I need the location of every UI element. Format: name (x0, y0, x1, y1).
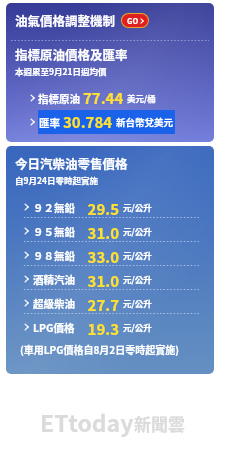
staticText: 33.0 (81, 246, 119, 264)
staticText: 超級柴油 (33, 296, 75, 311)
staticText: ETtoday (40, 405, 134, 438)
staticText: 27.7 (81, 294, 119, 312)
staticText: 31.0 (81, 222, 119, 240)
button[interactable]: ９８無鉛 (24, 246, 204, 264)
staticText: 酒精汽油 (33, 272, 75, 287)
button[interactable]: 指標原油 (30, 87, 156, 109)
button[interactable]: 酒精汽油 (24, 270, 204, 288)
staticText: 19.3 (81, 318, 119, 336)
button[interactable]: 超級柴油 (24, 294, 204, 312)
staticText: 今日汽柴油零售價格 (15, 154, 128, 172)
button[interactable]: 匯率 (30, 110, 175, 134)
staticText: 29.5 (81, 198, 119, 216)
staticText: 指標原油價格及匯率 (15, 45, 128, 63)
staticText: 元/公升 (123, 201, 152, 213)
staticText: 31.0 (81, 270, 119, 288)
staticText: 新台幣兌美元 (116, 115, 174, 129)
staticText: 77.44 (83, 87, 124, 109)
staticText: 本週累至9月21日週均價 (15, 65, 107, 77)
staticText: ９２無鉛 (33, 200, 75, 215)
staticText: 元/公升 (123, 249, 152, 261)
staticText: 匯率 (39, 115, 60, 130)
staticText: 自9月24日零時起實施 (15, 174, 99, 186)
staticText: LPG價格 (33, 320, 75, 335)
staticText: 新聞雲 (134, 411, 185, 436)
staticText: 元/公升 (123, 225, 152, 237)
button[interactable]: LPG價格 (24, 318, 204, 336)
button[interactable]: ９２無鉛 (24, 198, 204, 216)
staticText: 元/公升 (123, 321, 152, 333)
staticText: 30.784 (63, 111, 113, 133)
staticText: 元/公升 (123, 297, 152, 309)
staticText: 美元/桶 (127, 92, 156, 104)
staticText: GO (127, 15, 139, 26)
staticText: ９８無鉛 (33, 248, 75, 263)
staticText: 指標原油 (38, 91, 80, 106)
staticText: ９５無鉛 (33, 224, 75, 239)
button[interactable]: ９５無鉛 (24, 222, 204, 240)
staticText: 油氣價格調整機制 (15, 11, 116, 29)
staticText: (車用LPG價格自8月2日零時起實施) (20, 342, 190, 356)
button[interactable]: GO (127, 15, 144, 26)
staticText: 元/公升 (123, 273, 152, 285)
